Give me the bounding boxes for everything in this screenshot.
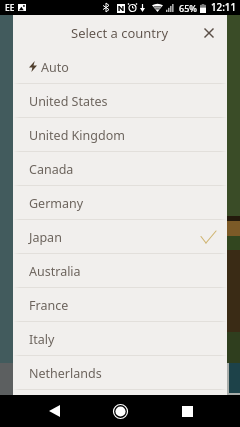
button[interactable]: Auto: [13, 50, 227, 84]
button[interactable]: Japan: [13, 220, 227, 254]
staticText: Japan: [29, 229, 62, 246]
button[interactable]: Netherlands: [13, 356, 227, 390]
staticText: Italy: [29, 331, 55, 348]
button[interactable]: United Kingdom: [13, 118, 227, 152]
button[interactable]: Close: [197, 21, 221, 45]
staticText: United States: [29, 93, 108, 110]
staticText: EE: [5, 2, 15, 14]
button[interactable]: Canada: [13, 152, 227, 186]
staticText: France: [29, 297, 69, 314]
button[interactable]: Home: [108, 399, 132, 423]
button[interactable]: Recent apps: [176, 400, 198, 422]
button[interactable]: Australia: [13, 254, 227, 288]
button[interactable]: Germany: [13, 186, 227, 220]
button[interactable]: France: [13, 288, 227, 322]
staticText: Netherlands: [29, 365, 102, 382]
staticText: 65%: [179, 2, 197, 14]
staticText: Select a country: [71, 24, 169, 42]
staticText: Australia: [29, 263, 81, 280]
staticText: Canada: [29, 161, 74, 178]
staticText: Auto: [41, 59, 69, 76]
staticText: Germany: [29, 195, 84, 212]
staticText: United Kingdom: [29, 127, 125, 144]
button[interactable]: Back: [43, 400, 65, 422]
button[interactable]: Italy: [13, 322, 227, 356]
staticText: 12:11: [211, 1, 237, 14]
button[interactable]: United States: [13, 84, 227, 118]
